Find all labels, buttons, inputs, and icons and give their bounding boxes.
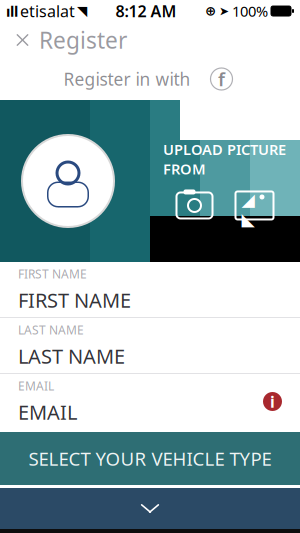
button[interactable]: Profile picture (18, 131, 118, 231)
button[interactable]: FIRST NAME (0, 262, 300, 317)
staticText: ◢◣ (241, 190, 254, 229)
staticText: ⊕ (205, 3, 216, 18)
button[interactable]: Choose photo from gallery (233, 188, 275, 222)
staticText: ıll (6, 1, 18, 21)
button[interactable]: Confirm (0, 488, 300, 529)
button[interactable]: Take photo with camera (173, 188, 215, 222)
staticText: i (270, 391, 275, 412)
staticText: EMAIL (18, 378, 54, 394)
staticText: UPLOAD PICTURE FROM (163, 139, 286, 178)
button[interactable]: EMAIL (0, 374, 300, 429)
staticText: EMAIL (18, 399, 77, 425)
button[interactable]: Register (0, 22, 141, 58)
staticText: LAST NAME (18, 343, 125, 369)
staticText: 100% (232, 1, 268, 21)
staticText: ◥ (77, 3, 87, 18)
staticText: LAST NAME (18, 322, 84, 338)
button[interactable]: Register with Facebook (206, 64, 236, 94)
staticText: etisalat (20, 0, 75, 22)
staticText: FIRST NAME (18, 287, 131, 313)
staticText: 8:12 AM (115, 0, 176, 22)
staticText: SELECT YOUR VEHICLE TYPE (28, 446, 271, 471)
staticText: f (218, 67, 225, 91)
staticText: FIRST NAME (18, 266, 87, 282)
staticText: ➤ (219, 4, 229, 18)
staticText: Register (39, 25, 127, 55)
button[interactable]: SELECT YOUR VEHICLE TYPE (0, 432, 300, 485)
staticText: Register in with (63, 67, 190, 90)
button[interactable]: LAST NAME (0, 318, 300, 373)
